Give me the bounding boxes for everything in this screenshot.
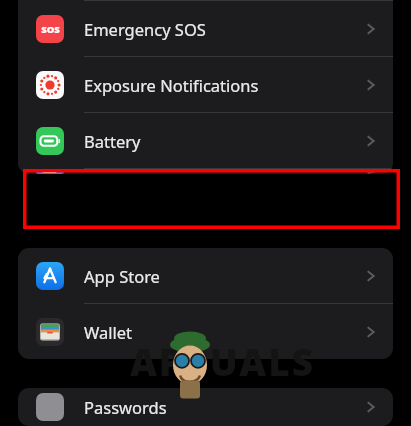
staticText: SOS (41, 23, 60, 36)
staticText: Wallet (84, 321, 133, 343)
button[interactable]: App Store (18, 248, 393, 303)
staticText: Passwords (84, 396, 167, 418)
staticText: Emergency SOS (84, 18, 206, 40)
button[interactable]: Exposure Notifications (18, 57, 393, 112)
button[interactable]: SOS (18, 1, 393, 56)
other: Highlighted row: Privacy & Security (23, 169, 400, 229)
staticText: APPUALS (130, 336, 316, 386)
staticText: Exposure Notifications (84, 74, 259, 96)
button[interactable]: Battery (18, 113, 393, 168)
staticText: App Store (84, 265, 160, 287)
staticText: Battery (84, 130, 141, 152)
button[interactable]: Wallet (18, 304, 393, 359)
staticText: Privacy & Security (84, 169, 222, 174)
button[interactable]: Passwords (18, 388, 393, 426)
button[interactable]: Privacy & Security (18, 169, 393, 174)
